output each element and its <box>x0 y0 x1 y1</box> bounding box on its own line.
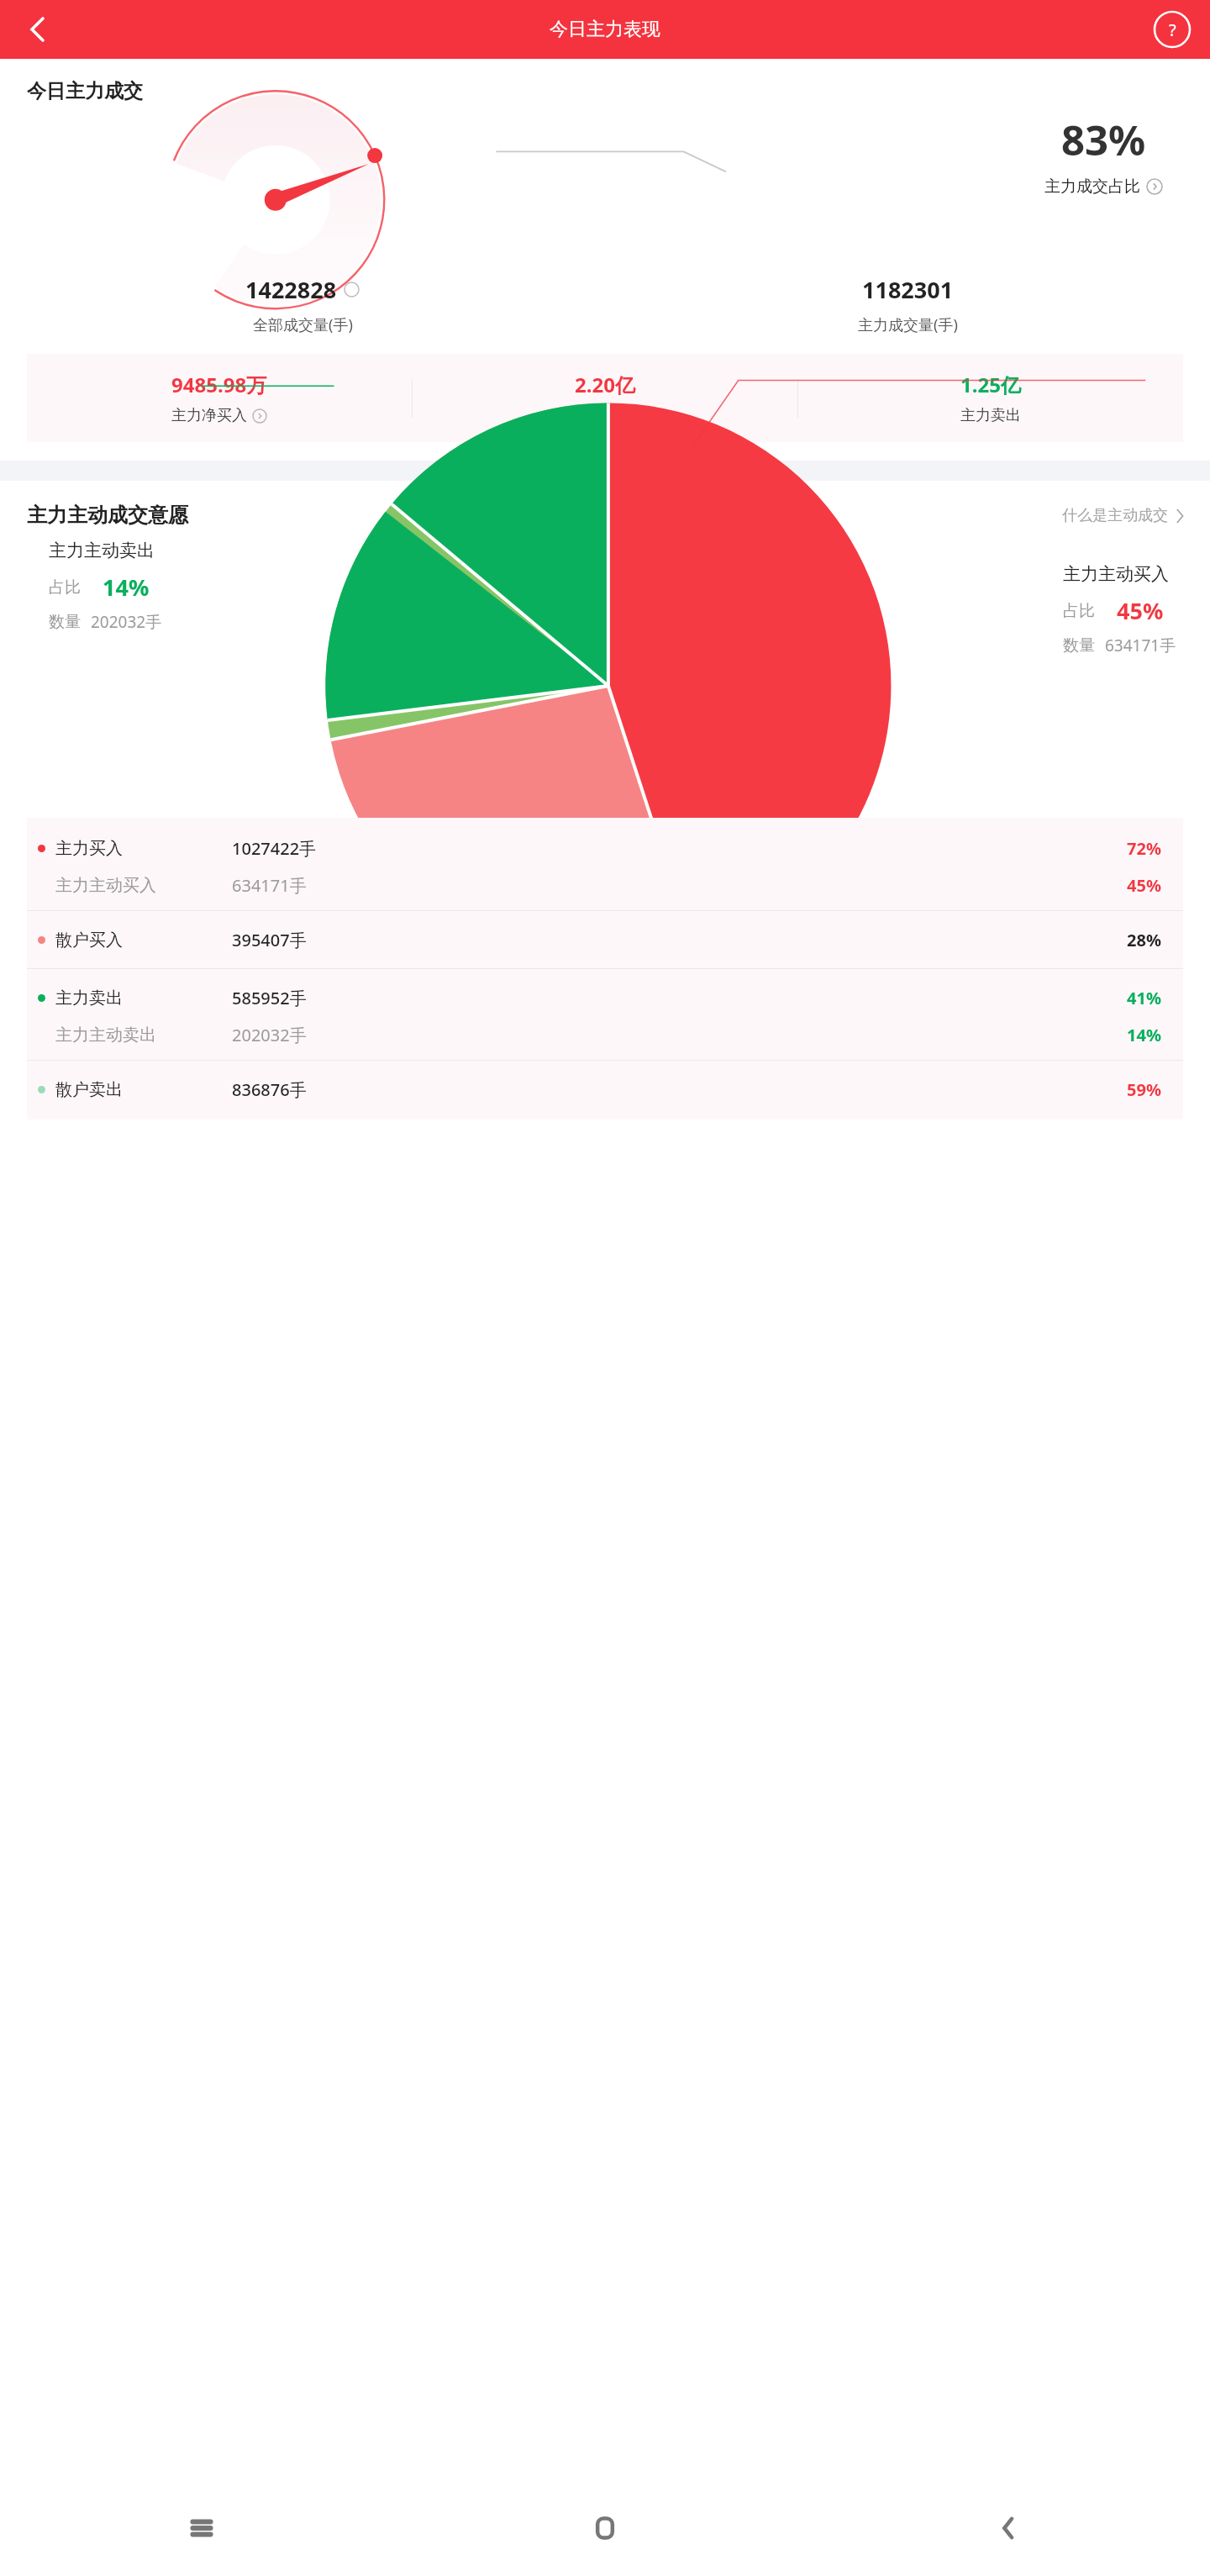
staticText: 散户卖出 <box>55 1079 232 1100</box>
staticText: 数量 <box>1063 635 1095 656</box>
staticText: 1.25亿 <box>960 371 1021 398</box>
button[interactable]: 1182301 <box>605 274 1210 335</box>
staticText: 散户买入 <box>55 930 232 951</box>
staticText: 634171手 <box>1105 635 1176 656</box>
staticText: 1027422手 <box>232 837 1127 860</box>
staticText: 836876手 <box>232 1078 1127 1101</box>
staticText: 主力主动买入 <box>1063 563 1169 585</box>
button[interactable]: Home <box>403 2479 807 2576</box>
button[interactable]: 1.25亿 <box>798 371 1183 425</box>
staticText: 14% <box>1127 1024 1161 1046</box>
button[interactable]: 1422828 <box>0 274 605 335</box>
button[interactable]: 散户卖出 <box>27 1071 1183 1108</box>
staticText: 主力主动买入 <box>55 875 232 896</box>
button[interactable]: Back <box>807 2479 1210 2576</box>
staticText: 45% <box>1127 874 1161 897</box>
staticText: 28% <box>1127 929 1161 951</box>
staticText: 83% <box>1061 112 1146 168</box>
staticText: 59% <box>1127 1078 1161 1101</box>
staticText: 395407手 <box>232 929 1127 951</box>
staticText: 202032手 <box>91 611 162 633</box>
staticText: 主力主动卖出 <box>55 1025 232 1046</box>
staticText: 占比 <box>1063 601 1095 621</box>
staticText: 今日主力表现 <box>550 18 660 41</box>
staticText: 主力主动成交意愿 <box>27 503 188 528</box>
staticText: 45% <box>1117 595 1164 626</box>
staticText: 全部成交量(手) <box>253 314 353 335</box>
button[interactable]: 主力成交占比 <box>1044 176 1163 197</box>
button[interactable]: Help <box>1153 10 1192 49</box>
staticText: 2.20亿 <box>575 371 635 398</box>
staticText: 1422828 <box>245 274 337 305</box>
button[interactable]: 散户买入 <box>27 921 1183 958</box>
staticText: 72% <box>1127 837 1161 860</box>
staticText: 主力成交量(手) <box>858 314 958 335</box>
staticText: 今日主力成交 <box>27 79 143 103</box>
staticText: ? <box>1169 18 1176 41</box>
staticText: 634171手 <box>232 874 1127 897</box>
button[interactable]: 什么是主动成交 <box>1062 506 1186 525</box>
button[interactable]: Back <box>15 8 59 51</box>
staticText: 585952手 <box>232 987 1127 1009</box>
staticText: 数量 <box>49 612 81 632</box>
button[interactable]: 2.20亿 <box>413 371 797 425</box>
staticText: 什么是主动成交 <box>1062 506 1168 525</box>
button[interactable]: 主力卖出 <box>27 979 1183 1016</box>
button[interactable]: Menu <box>0 2479 403 2576</box>
staticText: 主力买入 <box>55 838 232 859</box>
button[interactable]: 主力主动买入 <box>27 867 1183 903</box>
staticText: 主力买入 <box>575 406 635 425</box>
staticText: 1182301 <box>862 274 954 305</box>
button[interactable]: 主力买入 <box>27 830 1183 867</box>
staticText: 主力成交占比 <box>1044 176 1140 197</box>
staticText: 主力主动卖出 <box>49 540 155 561</box>
staticText: 主力净买入 <box>171 406 247 425</box>
staticText: 14% <box>103 572 150 603</box>
staticText: 主力卖出 <box>55 988 232 1009</box>
staticText: 202032手 <box>232 1024 1127 1046</box>
staticText: 9485.98万 <box>171 371 267 398</box>
button[interactable]: 9485.98万 <box>27 371 412 425</box>
staticText: 41% <box>1127 987 1161 1009</box>
staticText: 占比 <box>49 577 81 598</box>
staticText: 主力卖出 <box>960 406 1021 425</box>
button[interactable]: 主力主动卖出 <box>27 1016 1183 1053</box>
